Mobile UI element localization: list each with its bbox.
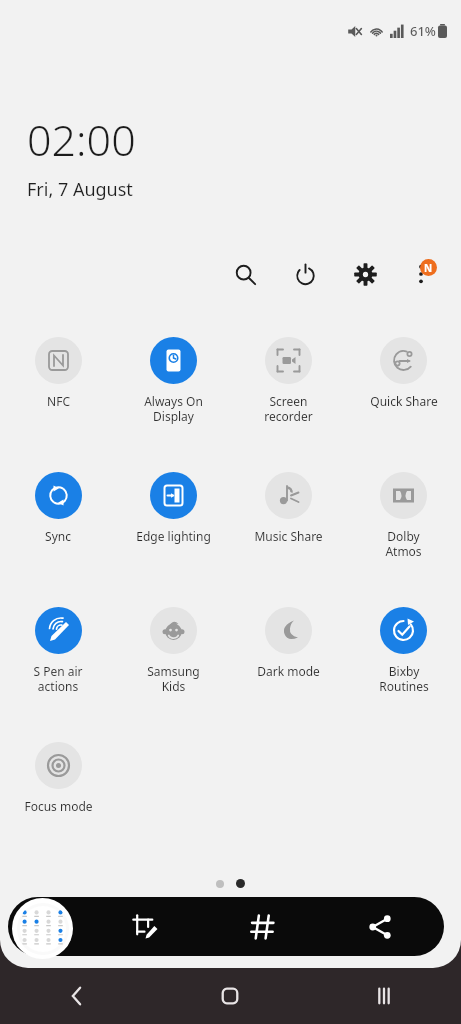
button[interactable]: Home — [153, 968, 307, 1024]
button[interactable]: Always On Display — [116, 337, 231, 472]
button[interactable]: Music Share — [231, 472, 346, 607]
staticText: Dolby Atmos — [385, 528, 422, 559]
button[interactable]: Power off — [283, 252, 327, 296]
button[interactable]: Tags — [204, 897, 321, 956]
button[interactable]: S Pen air actions — [0, 607, 116, 742]
staticText: N — [424, 261, 433, 275]
button[interactable]: Quick Share — [346, 337, 461, 472]
staticText: Bixby Routines — [379, 663, 429, 694]
button[interactable]: Crop — [86, 897, 204, 956]
staticText: Focus mode — [24, 798, 93, 814]
button[interactable]: Dolby Atmos — [346, 472, 461, 607]
staticText: Dark mode — [257, 663, 320, 679]
button[interactable]: Search — [223, 252, 267, 296]
staticText: 61% — [410, 22, 436, 40]
staticText: Samsung Kids — [147, 663, 200, 694]
staticText: Music Share — [254, 528, 323, 544]
staticText: 02:00 — [27, 110, 136, 169]
staticText: Sync — [45, 528, 71, 544]
staticText: NFC — [47, 393, 70, 409]
staticText: Screen recorder — [264, 393, 313, 424]
staticText: Fri, 7 August — [27, 177, 133, 202]
button[interactable]: Screen recorder — [231, 337, 346, 472]
button[interactable]: Share — [321, 897, 438, 956]
button[interactable]: Settings — [343, 252, 387, 296]
button[interactable]: Bixby Routines — [346, 607, 461, 742]
button[interactable]: More options — [399, 252, 443, 296]
staticText: S Pen air actions — [33, 663, 83, 694]
staticText: Always On Display — [144, 393, 203, 424]
button[interactable]: Sync — [0, 472, 116, 607]
button[interactable]: Focus mode — [0, 742, 116, 877]
button[interactable]: Recents — [307, 968, 461, 1024]
button[interactable]: NFC — [0, 337, 116, 472]
button[interactable]: Screenshot preview — [12, 898, 73, 959]
button[interactable]: Dark mode — [231, 607, 346, 742]
button[interactable]: Samsung Kids — [116, 607, 231, 742]
button[interactable]: Edge lighting — [116, 472, 231, 607]
button[interactable]: Back — [0, 968, 153, 1024]
staticText: Quick Share — [370, 393, 438, 409]
staticText: Edge lighting — [136, 528, 211, 544]
